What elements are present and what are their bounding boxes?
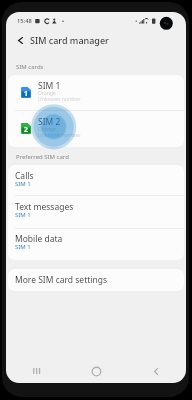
staticText: Orange <box>38 126 56 133</box>
button[interactable]: More SIM card settings <box>8 269 184 291</box>
staticText: SIM 1 <box>38 80 61 92</box>
staticText: SIM cards <box>16 63 44 71</box>
staticText: Mobile data <box>15 233 63 245</box>
button[interactable]: Back <box>126 359 186 383</box>
button[interactable]: Text messages <box>8 196 184 227</box>
staticText: 15:48 <box>17 17 32 25</box>
button[interactable]: 1 <box>8 75 184 111</box>
staticText: Preferred SIM card <box>16 153 69 161</box>
staticText: SIM card manager <box>30 34 109 46</box>
staticText: More SIM card settings <box>15 274 108 286</box>
staticText: SIM 1 <box>15 243 31 251</box>
button[interactable]: Recent apps <box>6 359 66 383</box>
staticText: SIM 1 <box>15 180 31 188</box>
staticText: 1 <box>24 89 28 98</box>
staticText: 2 <box>24 125 28 134</box>
staticText: SIM 1 <box>15 211 31 219</box>
staticText: Text messages <box>15 201 74 213</box>
staticText: Orange <box>38 90 56 97</box>
staticText: Unknown number <box>38 132 81 139</box>
button[interactable]: Mobile data <box>8 228 184 259</box>
button[interactable]: 2 <box>8 111 184 147</box>
button[interactable]: Home <box>66 359 126 383</box>
staticText: Unknown number <box>38 96 81 103</box>
button[interactable]: Calls <box>8 165 184 196</box>
staticText: SIM 2 <box>38 116 61 128</box>
staticText: Calls <box>15 170 34 182</box>
button[interactable]: Navigate up <box>14 34 26 46</box>
